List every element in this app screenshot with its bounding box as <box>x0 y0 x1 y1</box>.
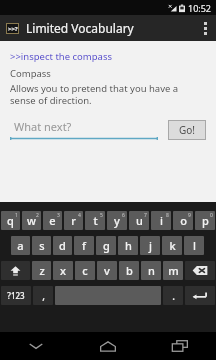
button[interactable]: e <box>43 211 62 230</box>
button[interactable]: Home <box>72 332 144 360</box>
staticText: 5 <box>100 212 103 219</box>
staticText: s <box>39 238 45 253</box>
button[interactable]: l <box>184 236 204 255</box>
button[interactable]: Enter <box>185 286 215 305</box>
button[interactable]: , <box>33 286 53 305</box>
button[interactable]: y <box>107 211 127 230</box>
staticText: b <box>126 263 133 278</box>
button[interactable]: What next? <box>10 119 158 140</box>
staticText: Go! <box>179 123 196 137</box>
staticText: l <box>193 238 196 253</box>
staticText: t <box>93 213 98 228</box>
staticText: 6 <box>122 212 125 219</box>
button[interactable]: f <box>74 236 94 255</box>
button[interactable]: t <box>85 211 105 230</box>
button[interactable]: . <box>163 286 183 305</box>
button[interactable]: h <box>118 236 138 255</box>
staticText: >>? <box>8 25 18 33</box>
staticText: j <box>149 238 152 253</box>
button[interactable]: p <box>195 211 215 230</box>
button[interactable]: z <box>32 261 51 280</box>
staticText: o <box>180 213 187 228</box>
staticText: >>inspect the compass <box>10 50 112 63</box>
button[interactable]: g <box>96 236 116 255</box>
staticText: r <box>71 213 76 228</box>
staticText: . <box>172 289 175 303</box>
staticText: c <box>82 263 88 278</box>
staticText: 1 <box>15 212 18 219</box>
button[interactable]: j <box>140 236 160 255</box>
button[interactable]: a <box>11 236 30 255</box>
staticText: 9 <box>188 212 191 219</box>
staticText: v <box>104 263 110 278</box>
button[interactable]: r <box>64 211 83 230</box>
staticText: n <box>148 263 155 278</box>
staticText: f <box>82 238 86 253</box>
staticText: g <box>103 238 110 253</box>
staticText: p <box>202 213 209 228</box>
staticText: d <box>59 238 66 253</box>
button[interactable]: Hide keyboard <box>0 332 72 360</box>
staticText: , <box>42 289 45 303</box>
button[interactable]: Backspace <box>185 261 215 280</box>
staticText: 0 <box>210 212 213 219</box>
button[interactable]: c <box>75 261 95 280</box>
staticText: Limited Vocabulary <box>26 20 134 36</box>
staticText: 3 <box>57 212 60 219</box>
button[interactable]: u <box>129 211 149 230</box>
staticText: a <box>17 238 24 253</box>
staticText: 7 <box>144 212 147 219</box>
button[interactable]: >>inspect the compass <box>10 50 112 63</box>
staticText: e <box>49 213 56 228</box>
button[interactable]: k <box>162 236 182 255</box>
staticText: 4 <box>78 212 81 219</box>
staticText: 2 <box>36 212 39 219</box>
button[interactable]: Shift <box>1 261 30 280</box>
staticText: z <box>39 263 45 278</box>
staticText: Allows you to pretend that you have a se… <box>10 82 206 107</box>
staticText: m <box>168 263 179 278</box>
staticText: i <box>160 213 163 228</box>
button[interactable]: ?123 <box>1 286 31 305</box>
staticText: u <box>136 213 143 228</box>
button[interactable]: n <box>141 261 161 280</box>
button[interactable]: q <box>1 211 20 230</box>
button[interactable]: Recent apps <box>144 332 216 360</box>
staticText: h <box>125 238 132 253</box>
button[interactable]: More options <box>194 15 216 41</box>
staticText: q <box>7 213 14 228</box>
staticText: Compass <box>10 67 51 80</box>
staticText: w <box>27 213 36 228</box>
staticText: ?123 <box>7 290 25 301</box>
button[interactable]: i <box>151 211 171 230</box>
staticText: 10:52 <box>188 2 212 14</box>
button[interactable]: s <box>32 236 51 255</box>
staticText: 8 <box>166 212 169 219</box>
button[interactable]: d <box>53 236 72 255</box>
button[interactable]: w <box>22 211 41 230</box>
button[interactable]: Go! <box>168 120 206 140</box>
staticText: k <box>169 238 176 253</box>
button[interactable]: x <box>53 261 73 280</box>
staticText: y <box>114 213 120 228</box>
button[interactable]: o <box>173 211 193 230</box>
button[interactable]: b <box>119 261 139 280</box>
button[interactable]: m <box>163 261 183 280</box>
staticText: x <box>60 263 66 278</box>
button[interactable]: v <box>97 261 117 280</box>
staticText: What next? <box>14 119 72 134</box>
